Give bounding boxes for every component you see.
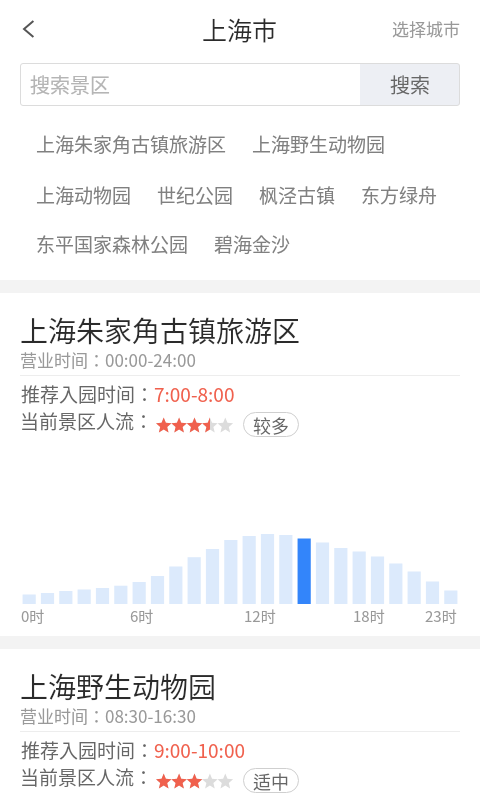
button[interactable]: 枫泾古镇 <box>259 181 336 209</box>
staticText: 搜索 <box>390 70 430 99</box>
button[interactable]: 适中 <box>253 768 289 793</box>
button[interactable]: 碧海金沙 <box>214 230 291 258</box>
staticText: 营业时间：00:00-24:00 <box>20 347 196 372</box>
staticText: 当前景区人流： <box>20 407 154 435</box>
staticText: 23时 <box>425 605 457 627</box>
button[interactable]: 东平国家森林公园 <box>36 230 189 258</box>
staticText: 较多 <box>253 412 289 437</box>
staticText: 当前景区人流： <box>20 763 154 791</box>
button[interactable]: 上海动物园 <box>36 181 132 209</box>
staticText: 6时 <box>130 605 154 627</box>
staticText: 碧海金沙 <box>214 230 291 258</box>
button[interactable]: 搜索景区 <box>20 63 360 106</box>
staticText: 18时 <box>353 605 385 627</box>
button[interactable]: Back <box>6 7 50 51</box>
staticText: 推荐入园时间：7:00-8:00 <box>21 380 235 408</box>
staticText: 世纪公园 <box>157 181 234 209</box>
staticText: 上海朱家角古镇旅游区 <box>36 130 227 158</box>
button[interactable]: 东方绿舟 <box>361 181 438 209</box>
button[interactable]: 上海朱家角古镇旅游区 <box>36 130 227 158</box>
staticText: 营业时间：08:30-16:30 <box>20 703 196 728</box>
staticText: 上海野生动物园 <box>20 666 217 707</box>
staticText: 上海市 <box>202 11 278 47</box>
button[interactable]: 搜索 <box>360 64 460 105</box>
staticText: 枫泾古镇 <box>259 181 336 209</box>
staticText: 选择城市 <box>392 16 460 41</box>
button[interactable]: 较多 <box>253 412 289 437</box>
staticText: 上海朱家角古镇旅游区 <box>20 310 301 351</box>
staticText: 0时 <box>21 605 45 627</box>
staticText: 搜索景区 <box>30 70 110 99</box>
staticText: 推荐入园时间：9:00-10:00 <box>21 736 245 764</box>
staticText: 东平国家森林公园 <box>36 230 189 258</box>
button[interactable]: 上海野生动物园 <box>252 130 386 158</box>
button[interactable]: 世纪公园 <box>157 181 234 209</box>
staticText: 东方绿舟 <box>361 181 438 209</box>
staticText: 上海动物园 <box>36 181 132 209</box>
staticText: 12时 <box>244 605 276 627</box>
button[interactable]: 选择城市 <box>392 16 460 41</box>
staticText: 上海野生动物园 <box>252 130 386 158</box>
staticText: 适中 <box>253 768 289 793</box>
